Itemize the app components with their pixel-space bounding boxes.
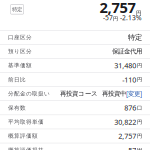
staticText: -57	[103, 13, 113, 22]
staticText: 2,757	[118, 131, 136, 141]
staticText: 概算評価損益	[8, 147, 44, 150]
button[interactable]: 分配金の取扱い	[0, 87, 150, 100]
staticText: 預り区分	[8, 48, 32, 55]
button[interactable]: 特定	[10, 5, 24, 14]
staticText: 特定	[12, 6, 22, 13]
staticText: -2.13%	[118, 13, 142, 22]
staticText: 2,757	[99, 0, 135, 17]
staticText: [変更]	[126, 89, 142, 98]
button[interactable]: 口座区分	[0, 30, 150, 44]
staticText: 円	[137, 147, 142, 150]
staticText: 特定	[128, 33, 142, 42]
button[interactable]: 前日比	[0, 73, 150, 86]
staticText: 再投資コース	[60, 90, 98, 98]
staticText: 概算評価額	[8, 132, 38, 140]
staticText: 口	[137, 104, 142, 111]
staticText: -110	[122, 75, 136, 84]
staticText: 円	[136, 10, 142, 17]
staticText: 分配金の取扱い	[8, 90, 50, 97]
staticText: -57	[126, 145, 136, 150]
staticText: 円	[137, 119, 142, 125]
staticText: 31,480	[114, 61, 136, 70]
button[interactable]: 預り区分	[0, 45, 150, 58]
button[interactable]: 平均取得単価	[0, 115, 150, 129]
staticText: 基準価額	[8, 62, 32, 69]
staticText: 再投資中	[98, 90, 126, 98]
button[interactable]: 保有数	[0, 101, 150, 115]
staticText: 876	[124, 103, 136, 113]
button[interactable]: 基準価額	[0, 59, 150, 72]
staticText: 円	[137, 133, 142, 139]
button[interactable]: 概算評価額	[0, 129, 150, 143]
staticText: 平均取得単価	[8, 118, 44, 125]
staticText: 円	[137, 76, 142, 83]
staticText: 30,822	[114, 117, 136, 127]
staticText: 保有数	[8, 104, 26, 111]
button[interactable]: 概算評価損益	[0, 143, 150, 150]
staticText: 前日比	[8, 76, 26, 83]
staticText: 口座区分	[8, 34, 32, 41]
staticText: 保証金代用	[112, 47, 142, 55]
staticText: 円	[137, 62, 142, 69]
staticText: 円	[113, 15, 118, 22]
